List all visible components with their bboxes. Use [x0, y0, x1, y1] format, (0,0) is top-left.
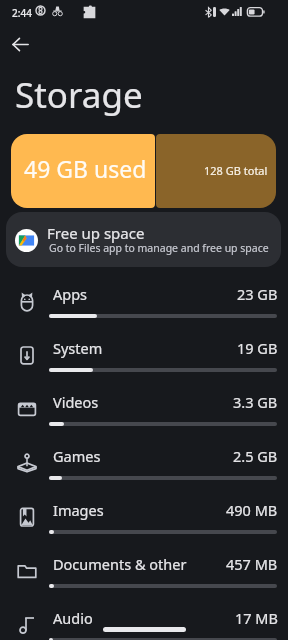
staticText: 128 GB total	[204, 163, 268, 178]
staticText: 490 MB	[226, 500, 278, 520]
button[interactable]: Images	[0, 490, 288, 544]
staticText: 3.3 GB	[233, 392, 278, 412]
button[interactable]: Free up space	[6, 212, 281, 267]
staticText: Audio	[53, 608, 93, 628]
button[interactable]: Back	[3, 27, 37, 61]
button[interactable]: Audio	[0, 598, 288, 640]
staticText: 49 GB used	[24, 153, 147, 184]
button[interactable]: Games	[0, 436, 288, 490]
staticText: 19 GB	[237, 338, 278, 358]
staticText: Games	[53, 446, 101, 466]
button[interactable]: Documents & other	[0, 544, 288, 598]
button[interactable]: System	[0, 328, 288, 382]
staticText: System	[53, 338, 103, 358]
staticText: 23 GB	[237, 284, 278, 304]
button[interactable]: 49 GB used	[11, 134, 155, 208]
staticText: Storage	[15, 71, 143, 119]
staticText: Go to Files app to manage and free up sp…	[49, 241, 269, 255]
staticText: Free up space	[47, 223, 145, 243]
staticText: 2.5 GB	[233, 446, 278, 466]
staticText: Images	[53, 500, 104, 520]
staticText: Apps	[53, 284, 88, 304]
button[interactable]: Videos	[0, 382, 288, 436]
staticText: 457 MB	[226, 554, 278, 574]
staticText: 2:44	[12, 6, 32, 20]
staticText: 17 MB	[235, 608, 278, 628]
staticText: Documents & other	[53, 554, 187, 574]
button[interactable]: Apps	[0, 274, 288, 328]
staticText: Videos	[53, 392, 99, 412]
button[interactable]: 128 GB total	[156, 134, 276, 208]
